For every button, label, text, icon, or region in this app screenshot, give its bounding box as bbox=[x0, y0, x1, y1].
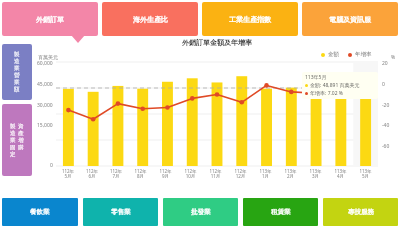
staticText: 113年 2月 bbox=[278, 168, 303, 180]
staticText: 固 bbox=[10, 144, 16, 151]
staticText: 零售業 bbox=[111, 208, 131, 216]
button[interactable]: 工業生產指數 bbox=[202, 2, 298, 36]
staticText: 112年 11月 bbox=[203, 168, 228, 180]
staticText: 工業生產指數 bbox=[229, 15, 271, 24]
staticText: 0 bbox=[50, 162, 53, 169]
staticText: 45,000 bbox=[37, 81, 53, 88]
staticText: 112年 9月 bbox=[153, 168, 178, 180]
staticText: 批發業 bbox=[191, 208, 211, 216]
staticText: 112年 6月 bbox=[80, 168, 104, 180]
staticText: 海外生產比 bbox=[133, 15, 168, 24]
staticText: 30,000 bbox=[37, 102, 53, 109]
staticText: 產 bbox=[18, 130, 24, 137]
staticText: 業 bbox=[10, 137, 16, 144]
button[interactable]: 電腦及資訊服 bbox=[302, 2, 398, 36]
staticText: -40 bbox=[382, 122, 390, 129]
staticText: 資 bbox=[18, 123, 24, 130]
staticText: 112年 5月 bbox=[56, 168, 80, 180]
staticText: 租賃業 bbox=[271, 208, 291, 216]
staticText: 112年 10月 bbox=[178, 168, 203, 180]
staticText: 113年5月 bbox=[305, 74, 327, 81]
staticText: 年增率 bbox=[355, 51, 372, 58]
staticText: 113年 5月 bbox=[353, 168, 378, 180]
staticText: 購 bbox=[18, 144, 24, 151]
staticText: % bbox=[391, 54, 396, 61]
staticText: 業 bbox=[14, 65, 20, 72]
button[interactable]: 製 bbox=[2, 44, 32, 100]
staticText: 增 bbox=[18, 137, 24, 144]
staticText: 電腦及資訊服 bbox=[329, 15, 371, 24]
staticText: 營 bbox=[14, 72, 20, 79]
button[interactable]: 海外生產比 bbox=[102, 2, 198, 36]
staticText: 113年 4月 bbox=[328, 168, 353, 180]
button[interactable]: 專技服務 bbox=[323, 198, 398, 226]
staticText: 113年 3月 bbox=[303, 168, 328, 180]
staticText: 外銷訂單金額及年增率 bbox=[182, 38, 252, 47]
staticText: 金額 bbox=[328, 51, 339, 58]
button[interactable]: 批發業 bbox=[163, 198, 238, 226]
staticText: 業 bbox=[14, 79, 20, 86]
button[interactable]: 餐飲業 bbox=[2, 198, 78, 226]
staticText: -60 bbox=[382, 143, 390, 150]
staticText: 餐飲業 bbox=[30, 208, 50, 216]
staticText: 112年 12月 bbox=[228, 168, 253, 180]
staticText: 額 bbox=[14, 86, 20, 93]
staticText: 年增率: 7.02 % bbox=[310, 90, 344, 97]
staticText: 造 bbox=[14, 58, 20, 65]
staticText: 製 bbox=[10, 123, 16, 130]
button[interactable]: 製 bbox=[2, 104, 32, 176]
staticText: 60,000 bbox=[37, 60, 53, 67]
staticText: 造 bbox=[10, 130, 16, 137]
staticText: 定 bbox=[10, 151, 16, 158]
staticText: 15,000 bbox=[37, 122, 53, 129]
staticText: 外銷訂單 bbox=[36, 15, 64, 24]
staticText: 113年 1月 bbox=[253, 168, 278, 180]
staticText: 金額: 48,891 百萬美元 bbox=[310, 82, 360, 89]
button[interactable]: 租賃業 bbox=[243, 198, 318, 226]
staticText: 20 bbox=[382, 60, 388, 67]
button[interactable]: 外銷訂單 bbox=[2, 2, 98, 36]
button[interactable]: 零售業 bbox=[83, 198, 158, 226]
staticText: 製 bbox=[14, 51, 20, 58]
staticText: 112年 7月 bbox=[104, 168, 128, 180]
staticText: 百萬美元 bbox=[38, 54, 58, 60]
staticText: 0 bbox=[382, 81, 385, 88]
staticText: -20 bbox=[382, 102, 390, 109]
staticText: 專技服務 bbox=[348, 208, 374, 216]
staticText: 112年 8月 bbox=[128, 168, 153, 180]
